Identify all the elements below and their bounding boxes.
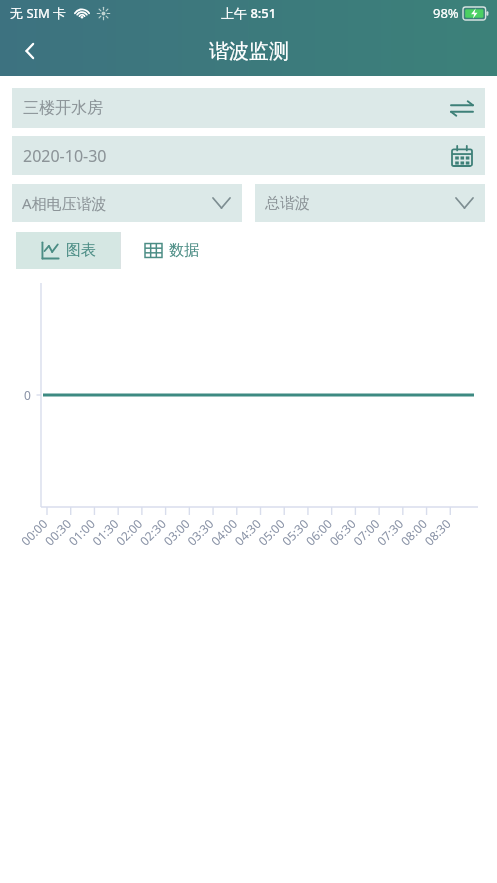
button[interactable]: A相电压谐波 [12,184,242,222]
button[interactable]: 总谐波 [255,184,485,222]
button[interactable]: 图表 [16,232,120,269]
other: Pick date [449,143,475,169]
staticText: 无 SIM 卡 [10,4,67,22]
staticText: 三楼开水房 [23,98,103,118]
staticText: 图表 [66,241,96,260]
button[interactable]: 数据 [121,232,222,269]
button[interactable]: Back [6,27,54,75]
other: Switch meter [449,95,475,121]
staticText: 98% [433,4,459,22]
staticText: 2020-10-30 [23,145,107,167]
staticText: A相电压谐波 [22,193,107,213]
button[interactable]: 2020-10-30 [12,136,485,175]
staticText: 总谐波 [265,194,310,213]
staticText: 上午 8:51 [221,4,277,22]
staticText: 谐波监测 [209,39,289,64]
button[interactable]: 三楼开水房 [12,88,485,128]
staticText: 数据 [169,241,199,260]
